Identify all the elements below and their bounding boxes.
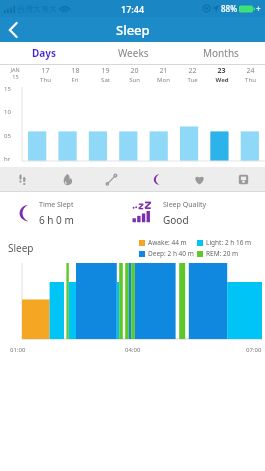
staticText: Tue xyxy=(187,76,198,84)
staticText: 21 xyxy=(159,66,168,76)
staticText: + xyxy=(256,3,261,14)
staticText: 18 xyxy=(71,66,80,76)
button[interactable]: 17 xyxy=(30,65,60,85)
staticText: Sun xyxy=(129,76,140,84)
button[interactable]: Weeks xyxy=(89,42,177,64)
button[interactable]: 18 xyxy=(60,65,90,85)
button[interactable]: Back xyxy=(0,17,26,42)
button[interactable]: Weight xyxy=(221,167,265,191)
staticText: Mon xyxy=(157,76,170,84)
staticText: 15 xyxy=(12,73,19,80)
staticText: 05 xyxy=(4,132,11,140)
staticText: Wed xyxy=(215,76,229,84)
staticText: Sleep xyxy=(8,241,34,255)
staticText: 15 xyxy=(4,85,11,93)
staticText: 01:00 xyxy=(10,346,26,354)
button[interactable]: 19 xyxy=(90,65,120,85)
button[interactable]: Sleep xyxy=(133,167,177,191)
button[interactable]: 21 xyxy=(149,65,178,85)
button[interactable]: Steps xyxy=(0,167,45,191)
button[interactable]: Distance xyxy=(89,167,133,191)
staticText: Thu xyxy=(245,76,256,84)
button[interactable]: JAN xyxy=(0,65,30,85)
button[interactable]: Months xyxy=(177,42,265,64)
staticText: Deep: 2 h 40 m xyxy=(148,249,194,258)
staticText: JAN xyxy=(10,66,20,73)
button[interactable]: Time Slept xyxy=(12,192,132,234)
staticText: 23 xyxy=(217,66,226,76)
staticText: Months xyxy=(203,46,239,60)
staticText: Sat xyxy=(101,76,110,84)
staticText: 04:00 xyxy=(125,346,141,354)
staticText: 17:44 xyxy=(121,3,145,15)
staticText: 20 xyxy=(130,66,139,76)
staticText: 6 h 0 m xyxy=(39,213,74,227)
staticText: Good xyxy=(163,213,189,227)
button[interactable]: 20 xyxy=(120,65,149,85)
staticText: Time Slept xyxy=(39,200,74,210)
staticText: Fri xyxy=(71,76,79,84)
button[interactable]: 23 xyxy=(207,65,236,85)
button[interactable]: 24 xyxy=(236,65,265,85)
staticText: Sleep xyxy=(116,21,150,39)
button[interactable]: 22 xyxy=(178,65,207,85)
button[interactable]: Heart rate xyxy=(177,167,221,191)
button[interactable]: Sleep Quality xyxy=(132,192,265,234)
staticText: 19 xyxy=(101,66,110,76)
button[interactable]: Calories xyxy=(45,167,89,191)
staticText: 10 xyxy=(4,108,11,116)
staticText: Light: 2 h 16 m xyxy=(206,238,252,247)
staticText: 07:00 xyxy=(246,346,262,354)
staticText: Days xyxy=(32,46,57,60)
staticText: hr xyxy=(4,155,11,163)
staticText: Thu xyxy=(40,76,51,84)
staticText: REM: 20 m xyxy=(206,249,239,258)
staticText: 17 xyxy=(41,66,50,76)
staticText: 88% xyxy=(221,3,237,14)
staticText: 24 xyxy=(246,66,255,76)
staticText: 22 xyxy=(188,66,197,76)
staticText: 台灣大哥大 xyxy=(17,4,57,14)
staticText: Sleep Quality xyxy=(163,200,207,210)
staticText: Weeks xyxy=(118,46,149,60)
button[interactable]: Days xyxy=(0,42,89,64)
staticText: Awake: 44 m xyxy=(148,238,187,247)
